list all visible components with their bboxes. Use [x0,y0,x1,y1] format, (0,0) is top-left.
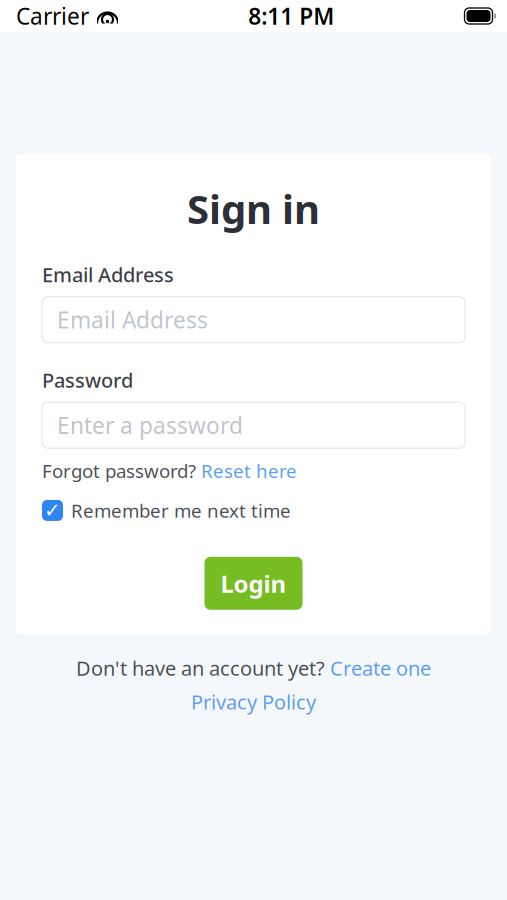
staticText: Carrier [16,1,89,31]
staticText: Reset here [201,458,297,483]
button[interactable]: Enter a password [42,402,465,448]
staticText: Sign in [187,182,320,235]
staticText: Login [220,567,286,599]
button[interactable]: Don't have an account yet? [76,655,431,681]
staticText: ✓ [44,499,61,522]
staticText: 8:11 PM [248,1,334,31]
staticText: Email Address [42,261,174,288]
staticText: Email Address [57,305,208,335]
button[interactable]: Login [204,557,302,610]
button[interactable]: Email Address [42,297,465,343]
staticText: Forgot password? [42,458,196,483]
staticText: Don't have an account yet? [76,655,325,681]
staticText: Enter a password [57,410,243,440]
button[interactable]: Privacy Policy [191,688,316,715]
staticText: Privacy Policy [191,688,316,715]
staticText: Remember me next time [71,498,291,523]
button[interactable]: ✓ [42,498,465,523]
staticText: Password [42,367,133,393]
staticText: Create one [330,655,431,681]
button[interactable]: Forgot password? [42,458,465,483]
